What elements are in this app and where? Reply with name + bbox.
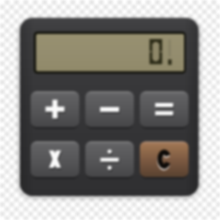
button[interactable]: Clear [140,141,189,177]
button[interactable]: Multiply [31,141,80,177]
button[interactable]: Plus [31,91,80,127]
button[interactable]: Divide [85,141,134,177]
button[interactable]: Equals [140,91,189,127]
button[interactable]: Minus [85,91,134,127]
